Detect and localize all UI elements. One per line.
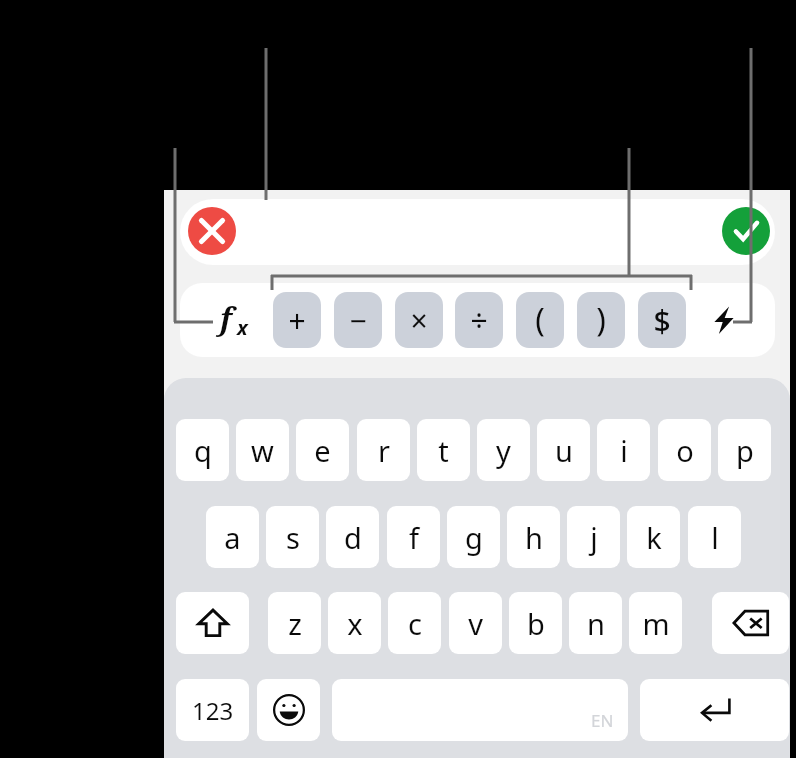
button[interactable]: q (176, 419, 229, 481)
staticText: l (711, 518, 719, 557)
button[interactable]: h (507, 506, 560, 568)
button[interactable]: x (328, 592, 381, 654)
button[interactable]: Functions (208, 296, 260, 344)
staticText: q (194, 431, 212, 470)
button[interactable]: Quick formulas (700, 294, 748, 346)
button[interactable]: Accept formula (722, 207, 770, 255)
staticText: m (642, 604, 670, 643)
staticText: − (349, 300, 367, 341)
button[interactable]: m (629, 592, 682, 654)
button[interactable]: g (447, 506, 500, 568)
staticText: w (251, 431, 274, 470)
staticText: $ (653, 300, 671, 341)
staticText: EN (591, 709, 614, 732)
staticText: t (438, 431, 449, 470)
button[interactable]: e (296, 419, 349, 481)
button[interactable]: c (388, 592, 441, 654)
staticText: z (288, 604, 302, 643)
button[interactable]: d (326, 506, 379, 568)
staticText: k (646, 518, 662, 557)
staticText: e (314, 431, 331, 470)
button[interactable]: u (537, 419, 590, 481)
staticText: ) (596, 298, 606, 342)
button[interactable]: j (567, 506, 620, 568)
staticText: c (408, 604, 422, 643)
staticText: p (736, 431, 754, 470)
staticText: g (465, 518, 483, 557)
button[interactable]: z (268, 592, 321, 654)
button[interactable]: ÷ (455, 292, 503, 348)
staticText: x (237, 314, 248, 341)
button[interactable]: − (334, 292, 382, 348)
button[interactable]: a (206, 506, 259, 568)
staticText: j (590, 518, 598, 557)
button[interactable]: f (387, 506, 440, 568)
staticText: 123 (192, 694, 234, 727)
button[interactable]: w (236, 419, 289, 481)
staticText: b (527, 604, 545, 643)
staticText: × (410, 300, 428, 341)
staticText: v (468, 604, 483, 643)
button[interactable]: o (658, 419, 711, 481)
staticText: + (288, 300, 306, 341)
button[interactable]: t (417, 419, 470, 481)
button[interactable]: Emoji (257, 679, 320, 741)
button[interactable]: 123 (176, 679, 249, 741)
staticText: r (378, 431, 390, 470)
staticText: y (496, 431, 511, 470)
staticText: h (525, 518, 543, 557)
staticText: ( (535, 298, 545, 342)
button[interactable]: Space (332, 679, 628, 741)
button[interactable]: n (569, 592, 622, 654)
button[interactable]: k (627, 506, 680, 568)
button[interactable]: $ (638, 292, 686, 348)
button[interactable]: l (688, 506, 741, 568)
staticText: i (620, 431, 628, 470)
staticText: f (409, 518, 419, 557)
button[interactable]: Shift (176, 592, 249, 654)
button[interactable]: r (357, 419, 410, 481)
button[interactable]: Cancel formula (188, 207, 236, 255)
staticText: f (220, 298, 233, 339)
staticText: a (224, 518, 241, 557)
button[interactable]: p (718, 419, 771, 481)
button[interactable]: + (273, 292, 321, 348)
button[interactable]: ) (577, 292, 625, 348)
button[interactable] (180, 199, 775, 265)
staticText: u (555, 431, 573, 470)
button[interactable]: b (509, 592, 562, 654)
staticText: o (676, 431, 694, 470)
staticText: d (344, 518, 362, 557)
staticText: n (587, 604, 605, 643)
button[interactable]: i (597, 419, 650, 481)
staticText: ÷ (470, 300, 488, 341)
staticText: x (347, 604, 363, 643)
button[interactable]: v (449, 592, 502, 654)
button[interactable]: Return (640, 679, 789, 741)
button[interactable]: × (395, 292, 443, 348)
button[interactable]: Backspace (712, 592, 789, 654)
button[interactable]: y (477, 419, 530, 481)
staticText: s (286, 518, 300, 557)
button[interactable]: s (266, 506, 319, 568)
button[interactable]: ( (516, 292, 564, 348)
